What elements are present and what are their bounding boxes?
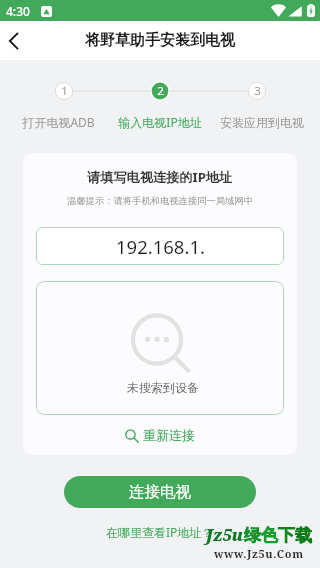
staticText: 下	[278, 525, 295, 546]
button[interactable]: 打开电视ADB	[0, 114, 118, 130]
staticText: www.Jz5u.Com	[214, 546, 304, 561]
staticText: 打开电视ADB	[22, 114, 95, 130]
staticText: 4:30	[6, 3, 30, 19]
staticText: 输入电视IP地址	[118, 114, 202, 130]
button[interactable]: 安装应用到电视	[202, 115, 320, 130]
staticText: 在哪里查看IP地址？	[106, 524, 214, 540]
staticText: 2	[157, 83, 164, 99]
staticText: 192.168.1.	[116, 234, 205, 259]
button[interactable]: 输入电视IP地址	[100, 114, 220, 130]
staticText: 重新连接	[143, 427, 195, 443]
staticText: 色	[261, 525, 278, 546]
staticText: 安装应用到电视	[220, 115, 304, 130]
staticText: 温馨提示：请将手机和电视连接同一局域网中	[67, 195, 253, 207]
button[interactable]: 连接电视	[64, 476, 256, 508]
button[interactable]: 192.168.1.	[36, 227, 284, 265]
button[interactable]: 在哪里查看IP地址？	[102, 520, 218, 544]
staticText: 请填写电视连接的IP地址	[87, 168, 233, 186]
staticText: 连接电视	[129, 482, 191, 502]
staticText: 未搜索到设备	[127, 380, 199, 395]
staticText: 将野草助手安装到电视	[85, 31, 235, 50]
button[interactable]: Back	[0, 21, 28, 60]
staticText: 载	[295, 525, 312, 546]
staticText: 3	[254, 83, 261, 99]
staticText: 1	[61, 83, 68, 99]
staticText: 绿	[244, 525, 261, 546]
staticText: Jz5u	[206, 524, 244, 546]
button[interactable]: 重新连接	[121, 425, 199, 445]
